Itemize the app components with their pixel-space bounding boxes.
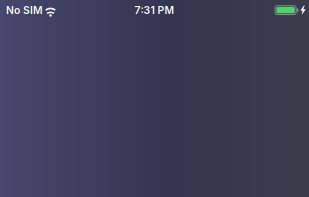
staticText: 7:31 PM xyxy=(134,4,174,16)
staticText: No SIM xyxy=(6,4,43,16)
